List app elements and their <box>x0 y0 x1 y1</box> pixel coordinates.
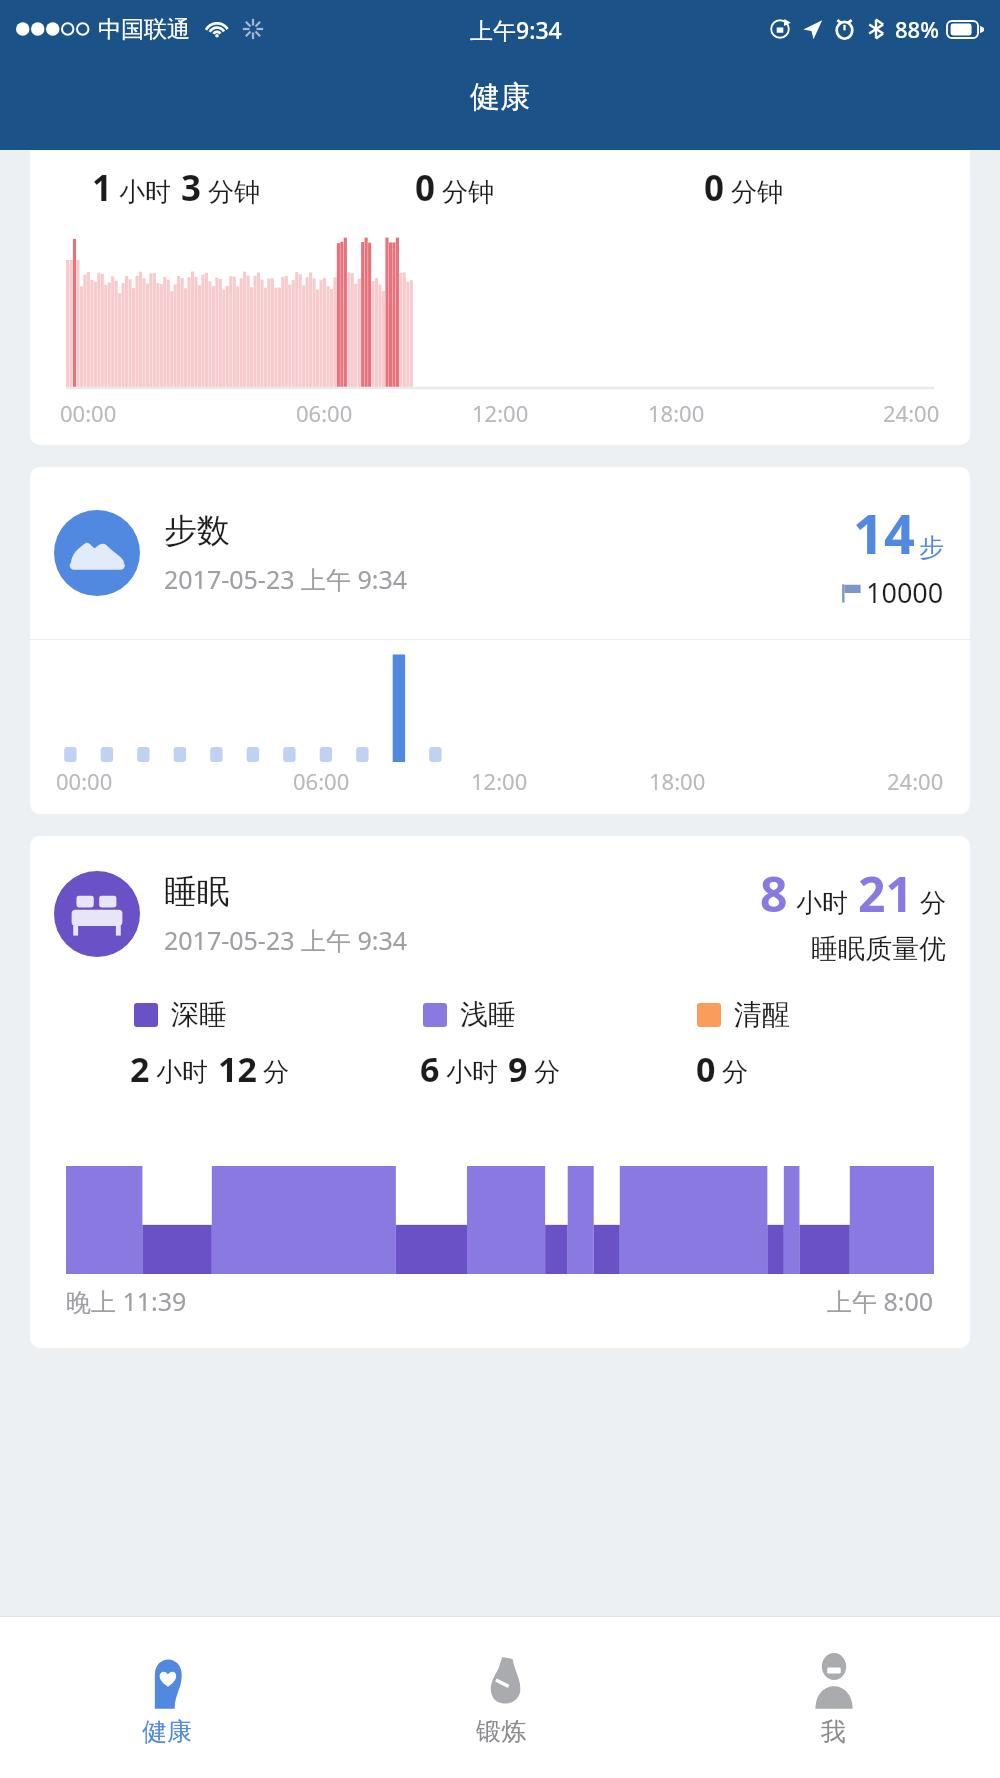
staticText: 00:00 <box>56 766 113 796</box>
button[interactable]: 锻炼 <box>334 1617 667 1778</box>
staticText: 清醒 <box>734 997 790 1032</box>
staticText: 1 <box>92 164 113 212</box>
staticText: 分钟 <box>208 176 260 209</box>
staticText: 分 <box>263 1056 289 1089</box>
staticText: 06:00 <box>293 766 350 796</box>
staticText: 24:00 <box>883 398 940 428</box>
staticText: 18:00 <box>649 766 706 796</box>
staticText: 2017-05-23 上午 9:34 <box>164 923 408 957</box>
staticText: 06:00 <box>296 398 353 428</box>
staticText: 分钟 <box>731 176 783 209</box>
staticText: 21 <box>858 861 913 926</box>
staticText: 睡眠质量优 <box>811 932 946 966</box>
staticText: 健康 <box>470 78 530 116</box>
staticText: 浅睡 <box>460 997 516 1032</box>
staticText: 0 <box>696 1046 716 1092</box>
button[interactable]: 1 <box>30 150 970 445</box>
staticText: 上午9:34 <box>470 14 562 45</box>
staticText: 步数 <box>164 510 230 552</box>
staticText: 9 <box>508 1046 528 1092</box>
staticText: 步 <box>919 532 944 563</box>
staticText: 8 <box>760 861 788 926</box>
staticText: 12:00 <box>471 766 528 796</box>
staticText: 分钟 <box>442 176 494 209</box>
staticText: 6 <box>420 1046 440 1092</box>
staticText: 12:00 <box>472 398 529 428</box>
staticText: 18:00 <box>648 398 705 428</box>
staticText: 88% <box>895 14 939 44</box>
staticText: 我 <box>821 1716 846 1747</box>
staticText: 12 <box>218 1046 257 1092</box>
staticText: 锻炼 <box>476 1716 526 1747</box>
staticText: 0 <box>415 164 436 212</box>
staticText: 晚上 11:39 <box>66 1284 187 1318</box>
button[interactable]: 步数 <box>30 467 970 814</box>
staticText: 上午 8:00 <box>827 1284 934 1318</box>
staticText: 10000 <box>866 574 944 611</box>
staticText: 小时 <box>796 887 848 920</box>
staticText: 深睡 <box>171 997 227 1032</box>
staticText: 小时 <box>119 176 171 209</box>
staticText: 小时 <box>156 1056 208 1089</box>
staticText: 3 <box>181 164 202 212</box>
staticText: 睡眠 <box>164 871 230 913</box>
staticText: 分 <box>722 1056 748 1089</box>
staticText: 14 <box>853 496 915 570</box>
staticText: 0 <box>704 164 725 212</box>
button[interactable]: 健康 <box>0 1617 334 1778</box>
button[interactable]: 睡眠 <box>30 836 970 1348</box>
button[interactable]: 我 <box>667 1617 1000 1778</box>
staticText: 健康 <box>142 1716 192 1747</box>
staticText: 中国联通 <box>98 15 190 44</box>
staticText: 分 <box>920 887 946 920</box>
staticText: 小时 <box>446 1056 498 1089</box>
staticText: 2 <box>130 1046 150 1092</box>
staticText: 00:00 <box>60 398 117 428</box>
staticText: 分 <box>534 1056 560 1089</box>
staticText: 24:00 <box>887 766 944 796</box>
staticText: 2017-05-23 上午 9:34 <box>164 562 408 596</box>
